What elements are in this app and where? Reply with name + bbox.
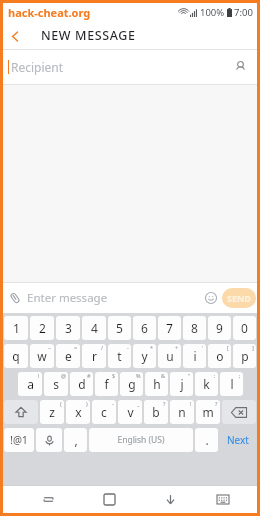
button[interactable]: 7 (158, 316, 181, 340)
button[interactable]: 5 (108, 316, 131, 340)
button[interactable]: 8 (183, 316, 206, 340)
staticText: w (37, 348, 47, 364)
button[interactable]: # (70, 372, 93, 396)
staticText: SEND (227, 292, 251, 304)
staticText: ; (239, 372, 241, 379)
button[interactable]: ( (40, 400, 64, 424)
staticText: 2 (39, 320, 46, 336)
button[interactable]: ? (196, 400, 220, 424)
button[interactable]: " (170, 372, 193, 396)
staticText: h (153, 376, 161, 392)
button[interactable]: 1 (4, 316, 28, 340)
staticText: English (US) (117, 434, 165, 446)
button[interactable]: 3 (56, 316, 80, 340)
staticText: = (74, 344, 78, 351)
staticText: + (175, 344, 179, 351)
staticText: u (166, 348, 174, 364)
staticText: 5 (116, 320, 123, 336)
button[interactable]: & (145, 372, 168, 396)
staticText: ~ (48, 344, 52, 351)
staticText: Recipient (11, 59, 64, 75)
button[interactable]: Shift (4, 400, 38, 424)
button[interactable]: Next (220, 427, 256, 453)
staticText: 7:00 (234, 6, 253, 19)
staticText: , (74, 432, 78, 448)
button[interactable]: = (56, 344, 80, 368)
staticText: ] (252, 344, 254, 351)
button[interactable]: 9 (208, 316, 231, 340)
button[interactable]: [ (208, 344, 231, 368)
staticText: _ (137, 400, 140, 407)
button[interactable]: ! (170, 400, 194, 424)
button[interactable]: 6 (133, 316, 156, 340)
button[interactable]: ' (183, 344, 206, 368)
staticText: ? (163, 400, 166, 407)
staticText: hack-cheat.org (8, 5, 91, 20)
staticText: n (178, 404, 186, 420)
button[interactable]: Contacts (229, 56, 251, 78)
button[interactable]: q (4, 344, 28, 368)
staticText: - (112, 400, 114, 407)
button[interactable]: - (92, 400, 116, 424)
button[interactable]: - (108, 344, 131, 368)
staticText: m (202, 404, 214, 420)
button[interactable]: ; (220, 372, 243, 396)
button[interactable]: ! (18, 372, 42, 396)
staticText: r (92, 348, 97, 364)
staticText: t (117, 348, 122, 364)
button[interactable]: 0 (233, 316, 256, 340)
button[interactable]: Backspace (222, 400, 256, 424)
button[interactable]: Voice input (36, 428, 62, 452)
staticText: & (161, 372, 166, 379)
staticText: @ (61, 372, 66, 379)
button[interactable]: $ (95, 372, 118, 396)
staticText: p (241, 348, 249, 364)
staticText: 8 (191, 320, 198, 336)
staticText: v (127, 404, 134, 420)
staticText: [ (227, 344, 229, 351)
button[interactable]: Home (95, 486, 123, 513)
staticText: ! (190, 400, 192, 407)
staticText: 9 (216, 320, 223, 336)
staticText: : (214, 372, 216, 379)
staticText: * (150, 344, 154, 351)
staticText: # (87, 372, 91, 379)
button[interactable]: Hide keyboard (156, 486, 184, 513)
staticText: ) (86, 400, 88, 407)
button[interactable]: Emoji (200, 287, 222, 309)
button[interactable]: Back (3, 24, 27, 48)
button[interactable]: ] (233, 344, 256, 368)
staticText: - (127, 344, 129, 351)
staticText: Enter message (27, 290, 108, 306)
staticText: ' (202, 344, 204, 351)
button[interactable]: English (US) (89, 428, 193, 452)
button[interactable]: , (64, 428, 87, 452)
staticText: d (78, 376, 86, 392)
button[interactable]: ) (66, 400, 90, 424)
button[interactable]: Recents (34, 486, 62, 513)
button[interactable]: : (195, 372, 218, 396)
button[interactable]: Keyboard settings (209, 486, 237, 513)
button[interactable]: . (195, 428, 218, 452)
button[interactable]: + (158, 344, 181, 368)
button[interactable]: @ (44, 372, 68, 396)
staticText: ! (38, 372, 40, 379)
staticText: y (141, 348, 148, 364)
staticText: $ (112, 372, 116, 379)
button[interactable]: 2 (30, 316, 54, 340)
button[interactable]: / (82, 344, 106, 368)
button[interactable]: * (133, 344, 156, 368)
button[interactable]: ? (144, 400, 168, 424)
staticText: 6 (141, 320, 148, 336)
button[interactable]: SEND (222, 288, 256, 308)
staticText: Next (227, 433, 249, 447)
button[interactable]: ~ (30, 344, 54, 368)
button[interactable]: 4 (82, 316, 106, 340)
button[interactable]: !@1 (4, 428, 34, 452)
button[interactable]: _ (118, 400, 142, 424)
button[interactable]: Attach (5, 288, 25, 308)
staticText: a (27, 376, 34, 392)
staticText: / (101, 344, 104, 351)
staticText: b (152, 404, 160, 420)
button[interactable]: % (120, 372, 143, 396)
